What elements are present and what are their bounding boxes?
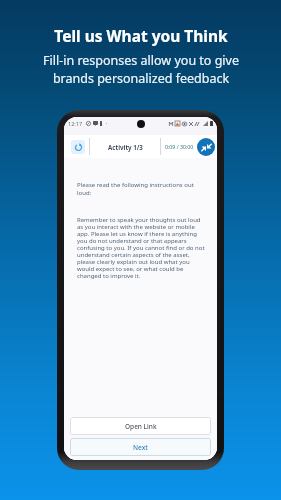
- staticText: Please read the following instructions o…: [77, 181, 208, 197]
- button[interactable]: Collapse: [197, 138, 215, 156]
- staticText: Next: [133, 443, 148, 452]
- staticText: Fill-in responses allow you to give bran…: [43, 52, 239, 87]
- staticText: 0:09 / 30:00: [165, 143, 194, 150]
- staticText: Remember to speak your thoughts out loud…: [77, 216, 205, 280]
- button[interactable]: Refresh: [71, 140, 85, 154]
- staticText: Tell us What you Think: [54, 25, 228, 46]
- button[interactable]: Open Link: [70, 417, 211, 435]
- staticText: 12:17: [68, 120, 83, 127]
- button[interactable]: Next: [70, 438, 211, 456]
- staticText: Open Link: [125, 422, 157, 431]
- staticText: Activity 1/3: [108, 143, 143, 151]
